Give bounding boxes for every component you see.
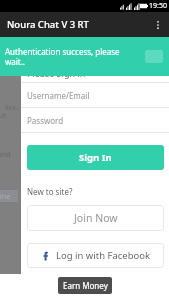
staticText: Sign In [79, 151, 112, 164]
button[interactable]: Password [21, 108, 169, 132]
button[interactable]: More options [147, 14, 169, 36]
staticText: Password [27, 115, 64, 126]
staticText: ine [0, 192, 11, 202]
button[interactable]: Username/Email [21, 83, 169, 107]
staticText: Log in with Facebook [56, 249, 151, 262]
staticText: 19:50 [149, 1, 167, 11]
staticText: Authentication success, please wait.. [5, 46, 129, 67]
button[interactable]: Dismiss [145, 50, 163, 63]
staticText: Join Now [74, 211, 118, 225]
button[interactable]: Earn Money [58, 277, 112, 294]
staticText: Noura Chat V 3 RT [7, 18, 89, 31]
button[interactable]: Sign In [27, 145, 164, 170]
staticText: Earn Money [63, 280, 108, 291]
button[interactable]: Log in with Facebook [27, 243, 164, 268]
staticText: and [0, 150, 11, 160]
staticText: Username/Email [27, 90, 90, 101]
staticText: New to site? [27, 186, 73, 197]
staticText: ut [0, 111, 6, 121]
staticText: like- [5, 103, 19, 113]
staticText: Please Sign in [27, 67, 86, 79]
button[interactable]: Join Now [27, 205, 164, 231]
